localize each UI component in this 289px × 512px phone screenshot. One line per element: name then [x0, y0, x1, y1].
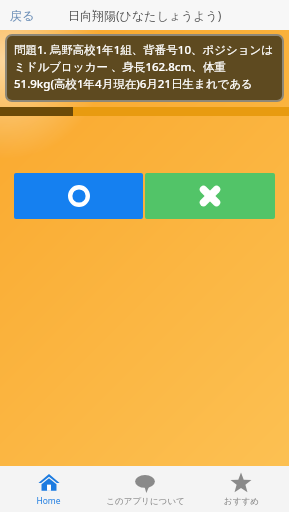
button[interactable]: Maru - correct: [14, 173, 143, 219]
staticText: 日向翔陽(ひなたしょうよう): [68, 7, 222, 23]
staticText: 戻る: [10, 8, 35, 23]
button[interactable]: おすすめ: [193, 466, 289, 512]
button[interactable]: Home: [0, 466, 97, 512]
button[interactable]: Batsu - incorrect: [145, 173, 275, 219]
button[interactable]: このアプリについて: [97, 466, 193, 512]
staticText: 問題1. 烏野高校1年1組、背番号10、ポジションはミドルブロッカー 、身長16…: [14, 42, 276, 91]
staticText: このアプリについて: [106, 496, 185, 507]
button[interactable]: 戻る: [0, 4, 45, 27]
staticText: Home: [36, 495, 61, 507]
staticText: おすすめ: [224, 496, 259, 507]
